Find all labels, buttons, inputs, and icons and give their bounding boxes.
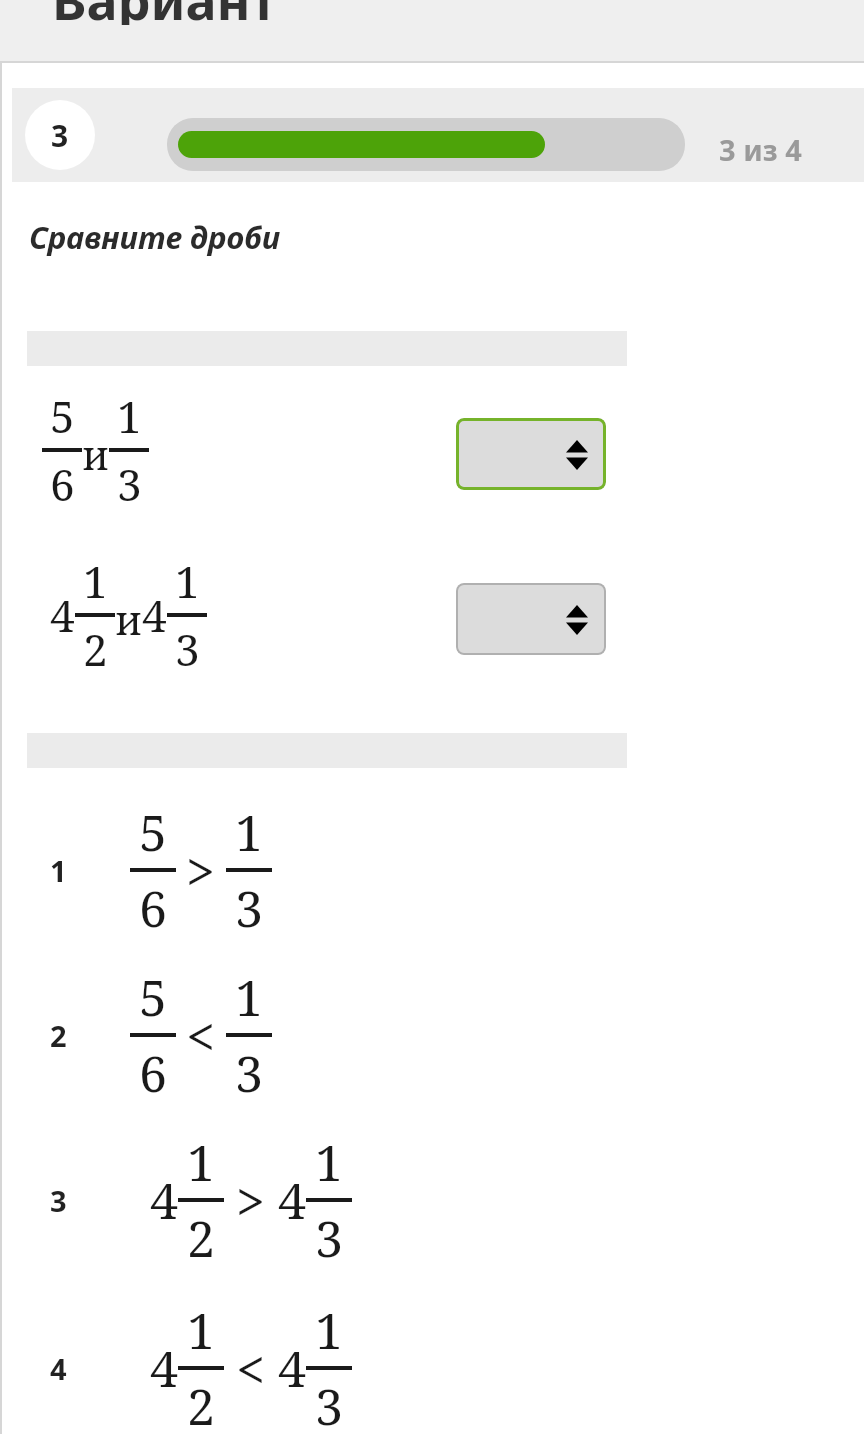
staticText: 2 — [50, 1016, 130, 1055]
staticText: 6 — [139, 1039, 167, 1107]
button[interactable]: 3 — [0, 1120, 864, 1280]
staticText: 5 — [50, 386, 75, 446]
button[interactable]: 3 — [25, 100, 95, 170]
staticText: > — [236, 1165, 266, 1236]
staticText: и — [82, 427, 109, 481]
staticText: Сравните дроби — [29, 216, 281, 258]
staticText: 3 — [50, 1181, 150, 1220]
staticText: 4 — [50, 585, 75, 645]
staticText: и — [115, 592, 142, 646]
staticText: 2 — [83, 619, 108, 679]
staticText: > — [186, 835, 216, 906]
staticText: 3 — [51, 115, 69, 156]
staticText: 1 — [315, 1128, 343, 1196]
staticText: 1 — [187, 1128, 215, 1196]
staticText: 6 — [50, 454, 75, 514]
staticText: 5 — [139, 798, 167, 866]
staticText: < — [236, 1333, 266, 1404]
staticText: 4 — [278, 1334, 306, 1402]
button[interactable]: 4 — [0, 1288, 864, 1434]
staticText: 5 — [139, 963, 167, 1031]
staticText: 4 — [150, 1166, 178, 1234]
staticText: 3 — [235, 874, 263, 942]
staticText: 1 — [83, 551, 108, 611]
staticText: 3 — [117, 454, 142, 514]
staticText: 3 — [315, 1372, 343, 1434]
staticText: 2 — [187, 1204, 215, 1272]
staticText: 4 — [278, 1166, 306, 1234]
staticText: 3 из 4 — [719, 130, 802, 169]
staticText: 1 — [117, 386, 142, 446]
staticText: 4 — [142, 585, 167, 645]
staticText: 1 — [235, 798, 263, 866]
staticText: < — [186, 1000, 216, 1071]
staticText: 2 — [187, 1372, 215, 1434]
staticText: 1 — [315, 1296, 343, 1364]
button[interactable]: Выберите вариант ответа — [456, 418, 606, 490]
staticText: 4 — [150, 1334, 178, 1402]
staticText: 1 — [187, 1296, 215, 1364]
staticText: 6 — [139, 874, 167, 942]
staticText: 4 — [50, 1349, 150, 1388]
staticText: 3 — [175, 619, 200, 679]
staticText: 1 — [175, 551, 200, 611]
button[interactable]: Выберите вариант ответа — [456, 583, 606, 655]
button[interactable]: 2 — [0, 955, 864, 1115]
staticText: 1 — [235, 963, 263, 1031]
staticText: Вариант — [52, 0, 277, 25]
staticText: 3 — [235, 1039, 263, 1107]
staticText: 1 — [50, 851, 130, 890]
button[interactable]: 1 — [0, 790, 864, 950]
staticText: 3 — [315, 1204, 343, 1272]
